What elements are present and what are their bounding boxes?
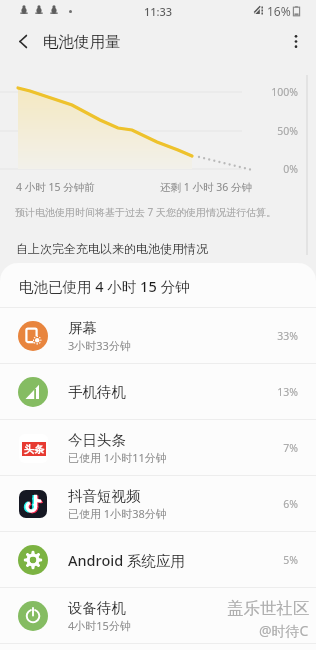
staticText: 还剩 1 小时 36 分钟 <box>160 180 252 194</box>
button[interactable]: 设备待机 <box>0 588 316 643</box>
staticText: 设备待机 <box>68 599 126 617</box>
staticText: 电池使用量 <box>43 32 121 52</box>
staticText: 4小时15分钟 <box>68 618 131 633</box>
button[interactable]: More options <box>276 22 316 60</box>
staticText: 33% <box>258 329 298 343</box>
staticText: 11:33 <box>144 4 173 19</box>
staticText: 电池已使用 4 小时 15 分钟 <box>19 276 190 296</box>
staticText: 5% <box>258 553 298 567</box>
button[interactable]: 屏幕 <box>0 308 316 363</box>
staticText: 手机待机 <box>68 383 126 401</box>
staticText: 6% <box>258 497 298 511</box>
staticText: 100% <box>238 85 298 99</box>
staticText: 今日头条 <box>68 431 126 449</box>
staticText: 预计电池使用时间将基于过去 7 天您的使用情况进行估算。 <box>15 205 276 219</box>
staticText: 屏幕 <box>68 319 97 337</box>
staticText: 已使用 1小时11分钟 <box>68 450 167 465</box>
button[interactable]: Back <box>0 22 46 60</box>
staticText <box>258 609 298 623</box>
button[interactable]: 头条 <box>0 420 316 475</box>
staticText: 4 小时 15 分钟前 <box>16 180 95 194</box>
button[interactable]: 手机待机 <box>0 364 316 419</box>
button[interactable]: 抖音短视频 <box>0 476 316 531</box>
staticText: 16% <box>267 3 291 19</box>
staticText: @时待C <box>259 621 309 640</box>
staticText: 头条 <box>24 443 44 456</box>
staticText: Android 系统应用 <box>68 550 185 570</box>
staticText: 13% <box>258 385 298 399</box>
staticText: 抖音短视频 <box>68 487 141 505</box>
staticText: 自上次完全充电以来的电池使用情况 <box>16 241 208 256</box>
staticText: 3小时33分钟 <box>68 338 131 353</box>
button[interactable]: Android 系统应用 <box>0 532 316 587</box>
staticText: 已使用 1小时38分钟 <box>68 506 167 521</box>
staticText: 50% <box>238 124 298 138</box>
staticText: 盖乐世社区 <box>227 598 310 619</box>
staticText: 7% <box>258 441 298 455</box>
staticText: 0% <box>238 162 298 176</box>
